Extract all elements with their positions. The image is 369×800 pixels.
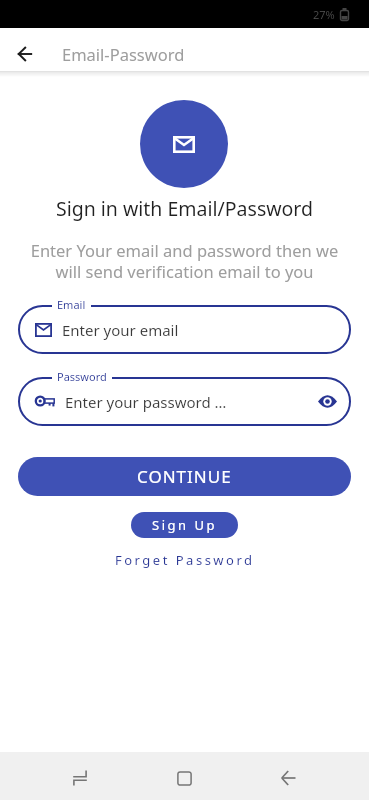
staticText: Sign Up (152, 516, 217, 534)
staticText: Forget Password (115, 551, 255, 569)
button[interactable] (264, 754, 312, 800)
button[interactable]: Sign Up (131, 512, 238, 538)
staticText: Enter Your email and password then we wi… (0, 239, 369, 283)
staticText: Email (57, 297, 86, 312)
button[interactable]: Enter your email (18, 305, 351, 354)
button[interactable] (160, 754, 208, 800)
button[interactable]: Enter your password … (18, 377, 351, 426)
button[interactable]: CONTINUE (18, 457, 351, 496)
staticText: 27% (313, 7, 335, 22)
button[interactable] (5, 34, 45, 74)
staticText: Enter your password … (65, 392, 227, 412)
staticText: Password (57, 369, 107, 384)
button[interactable] (56, 754, 104, 800)
staticText: CONTINUE (137, 465, 232, 488)
staticText: Sign in with Email/Password (0, 195, 369, 222)
staticText: Email-Password (62, 43, 185, 65)
staticText: Enter your email (62, 320, 179, 340)
button[interactable]: Forget Password (0, 551, 369, 569)
